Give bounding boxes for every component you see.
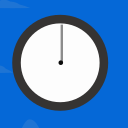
button[interactable]: Clock bbox=[0, 0, 128, 128]
